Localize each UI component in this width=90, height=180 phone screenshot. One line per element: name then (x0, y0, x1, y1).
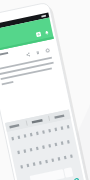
button[interactable]: Note taking app phone mockup (0, 0, 90, 180)
